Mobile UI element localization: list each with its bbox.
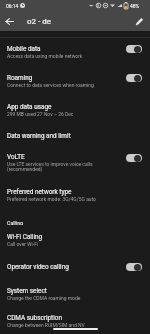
staticText: 06:14 [6, 3, 19, 9]
staticText: System select [7, 287, 47, 295]
staticText: App data usage [7, 103, 52, 111]
staticText: Connect to data services when roaming [7, 82, 94, 88]
button[interactable]: CDMA subscription [0, 302, 150, 332]
button[interactable]: Wi-Fi Calling [0, 225, 150, 251]
button[interactable]: App data usage [0, 90, 150, 120]
staticText: 48% [130, 3, 140, 9]
staticText: 299 MB used 27 Nov – 26 Dec [7, 111, 74, 117]
button[interactable]: Roaming [0, 61, 150, 90]
button[interactable]: System select [0, 275, 150, 302]
staticText: Change between RUIM/SIM and NV [7, 322, 85, 328]
staticText: Wi-Fi Calling [7, 233, 43, 241]
staticText: Use LTE services to improve voice calls … [7, 161, 93, 173]
staticText: Preferred network mode: 3G/4G/5G auto [7, 196, 96, 202]
staticText: Roaming [7, 74, 33, 82]
button[interactable]: Navigate up [2, 14, 17, 29]
button[interactable]: Preferred network type [0, 175, 150, 207]
staticText: Data warning and limit [7, 132, 71, 140]
staticText: Mobile data [7, 45, 41, 53]
staticText: Operator video calling [7, 263, 69, 271]
staticText: VoLTE [7, 153, 25, 161]
staticText: Change the CDMA roaming mode [7, 295, 81, 301]
staticText: o2 - de [27, 17, 51, 26]
button[interactable]: VoLTE [0, 141, 150, 175]
staticText: CDMA subscription [7, 314, 62, 322]
button[interactable]: Operator video calling [0, 251, 150, 275]
staticText: Access data using mobile network [7, 53, 83, 59]
staticText: Call over Wi-Fi [7, 241, 39, 247]
button[interactable]: Data warning and limit [0, 120, 150, 141]
staticText: Preferred network type [7, 188, 72, 196]
button[interactable]: Edit [132, 14, 147, 29]
staticText: Calling [7, 220, 23, 225]
button[interactable]: Mobile data [0, 31, 150, 61]
